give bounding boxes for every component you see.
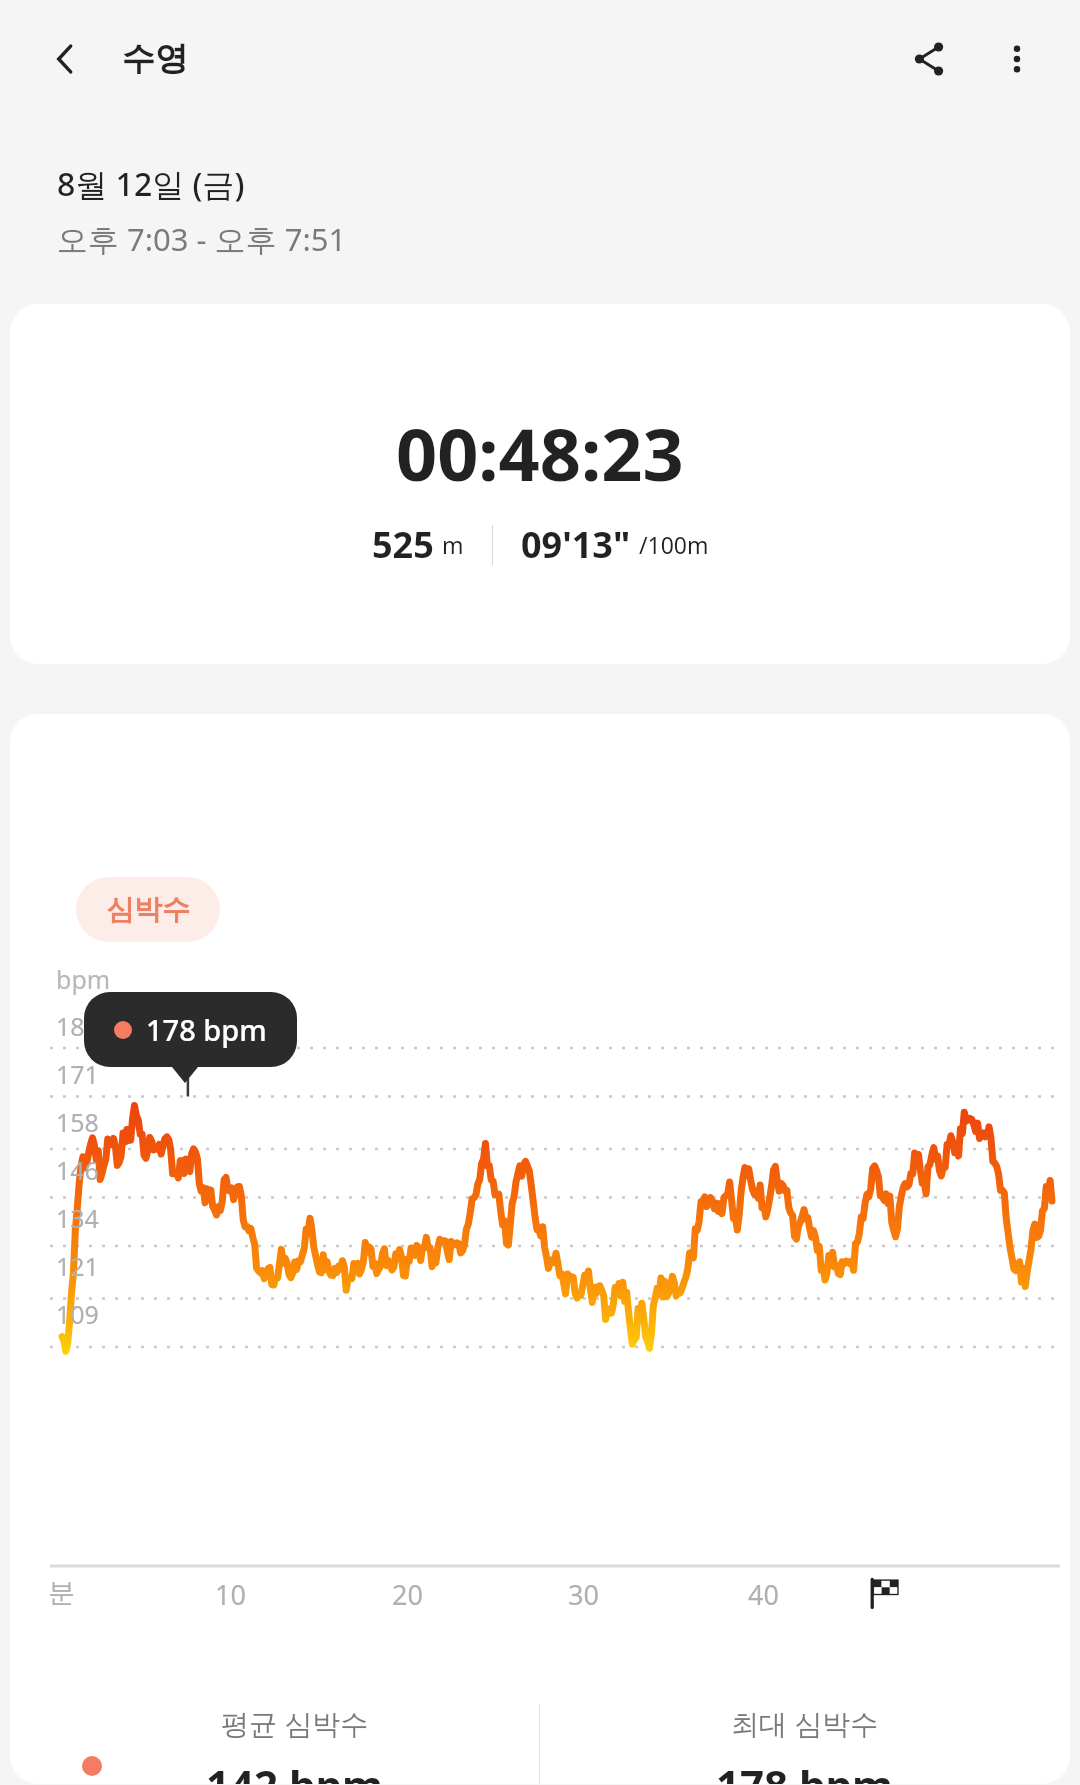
staticText: 178 bpm — [146, 1010, 267, 1049]
staticText: 171 — [56, 1057, 99, 1091]
button[interactable]: 00:48:23 — [10, 304, 1070, 664]
staticText: 심박수 — [106, 892, 190, 927]
staticText: /100m — [639, 529, 709, 560]
staticText: 40 — [748, 1576, 779, 1613]
staticText: 분 — [48, 1576, 75, 1610]
staticText: 최대 심박수 — [731, 1704, 879, 1742]
staticText: 109 — [56, 1297, 99, 1331]
staticText: 158 — [56, 1105, 99, 1139]
staticText: 146 — [56, 1153, 99, 1187]
staticText: 평균 심박수 — [221, 1704, 369, 1742]
staticText: m — [442, 529, 464, 560]
staticText: 525 — [372, 520, 434, 569]
staticText: 8월 12일 (금) — [57, 162, 245, 206]
button[interactable]: More options — [984, 26, 1050, 92]
staticText: 178 bpm — [716, 1756, 894, 1784]
staticText: bpm — [56, 962, 111, 996]
button[interactable]: Back — [36, 28, 98, 90]
staticText: 30 — [568, 1576, 599, 1613]
staticText: 10 — [215, 1576, 246, 1613]
button[interactable]: 심박수 — [76, 877, 220, 942]
staticText: 20 — [392, 1576, 423, 1613]
staticText: 09'13" — [521, 520, 631, 569]
staticText: 오후 7:03 - 오후 7:51 — [57, 218, 347, 260]
staticText: 121 — [56, 1249, 99, 1283]
staticText: 수영 — [122, 38, 188, 80]
staticText: 183 — [56, 1009, 99, 1043]
staticText: 00:48:23 — [396, 404, 684, 502]
staticText: 134 — [56, 1201, 99, 1235]
button[interactable]: Share — [896, 26, 962, 92]
staticText: 142 bpm — [206, 1756, 384, 1784]
